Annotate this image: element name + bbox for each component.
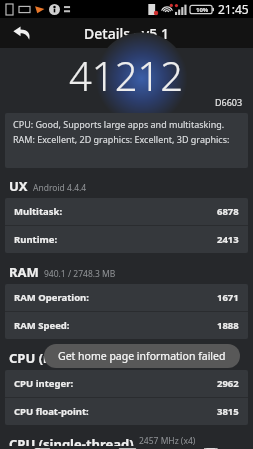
button[interactable]: Multitask: <box>5 198 248 225</box>
staticText: RAM <box>9 263 39 281</box>
staticText: 1888 <box>217 319 239 332</box>
staticText: CPU: Good, Supports large apps and multi… <box>13 118 240 145</box>
staticText: Get home page information failed <box>58 349 226 363</box>
staticText: D6603 <box>215 96 243 108</box>
staticText: 2962 <box>217 377 239 390</box>
staticText: CPU (single-thread) <box>9 435 134 446</box>
button[interactable]: CPU: Good, Supports large apps and multi… <box>5 113 248 168</box>
staticText: 2457 MHz (x4) <box>139 435 196 445</box>
staticText: 21:45 <box>218 1 249 17</box>
staticText: CPU float-point: <box>14 405 89 418</box>
button[interactable]: RAM Speed: <box>5 312 248 339</box>
staticText: 3815 <box>217 405 239 418</box>
staticText: 2413 <box>217 233 239 246</box>
staticText: RAM Operation: <box>14 291 89 304</box>
staticText: Runtime: <box>14 233 58 246</box>
button[interactable]: CPU integer: <box>5 370 248 397</box>
staticText: Multitask: <box>14 205 63 218</box>
staticText: RAM Speed: <box>14 319 70 332</box>
button[interactable]: RAM Operation: <box>5 284 248 311</box>
staticText: Android 4.4.4 <box>33 182 87 194</box>
staticText: 940.1 / 2748.3 MB <box>44 268 116 280</box>
staticText: 6878 <box>217 205 239 218</box>
staticText: Details - v5.1 <box>84 24 169 43</box>
staticText: CPU (multi-thread) <box>9 349 130 367</box>
button[interactable]: Runtime: <box>5 226 248 253</box>
staticText: 10% <box>196 6 209 14</box>
button[interactable]: Back <box>0 18 44 48</box>
staticText: 41212 <box>69 48 184 102</box>
staticText: 1671 <box>217 291 239 304</box>
button[interactable]: CPU float-point: <box>5 398 248 425</box>
staticText: CPU integer: <box>14 377 74 390</box>
staticText: UX <box>9 177 28 195</box>
staticText: 2457 MHz (x4) <box>135 354 192 366</box>
